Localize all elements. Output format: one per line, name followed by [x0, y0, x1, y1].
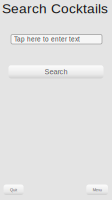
button[interactable]: Tap here to enter text	[11, 34, 102, 44]
staticText: Search	[44, 68, 67, 76]
button[interactable]: Menu	[86, 184, 108, 195]
button[interactable]: Quit	[4, 184, 24, 195]
staticText: Quit	[10, 187, 17, 192]
staticText: Search Cocktails	[2, 1, 108, 16]
staticText: Tap here to enter text	[14, 36, 80, 43]
staticText: Menu	[93, 187, 102, 192]
button[interactable]: Search	[8, 65, 103, 78]
